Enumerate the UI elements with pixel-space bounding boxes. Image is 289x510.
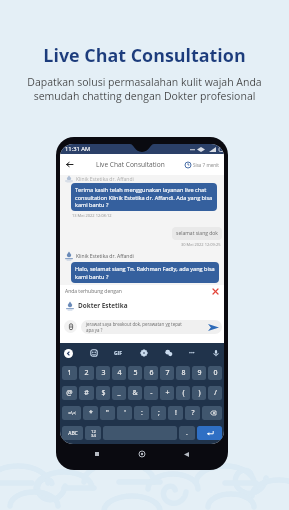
staticText: 7 <box>165 368 170 378</box>
staticText: Live Chat Consultation <box>43 43 246 67</box>
button[interactable]: ( <box>176 386 190 400</box>
button[interactable]: ABC <box>62 426 83 440</box>
button[interactable]: ? <box>185 406 200 420</box>
staticText: 4 <box>117 368 122 378</box>
button[interactable]: Emoji <box>165 349 173 357</box>
staticText: Sisa 7 menit <box>193 162 219 168</box>
staticText: 9 <box>197 368 202 378</box>
button[interactable]: ! <box>168 406 183 420</box>
other: End chat <box>212 288 219 295</box>
button[interactable]: # <box>79 386 94 400</box>
staticText: & <box>132 388 138 398</box>
button[interactable]: 7 <box>160 366 174 380</box>
staticText: Klinik Estetika dr. Affandi <box>76 253 134 260</box>
staticText: jerawat saya breakout dok, perawatan yg … <box>86 321 208 333</box>
staticText: # <box>84 388 89 398</box>
button[interactable]: Enter <box>197 426 222 440</box>
button[interactable]: _ <box>112 386 126 400</box>
staticText: Dokter Estetika <box>78 301 128 310</box>
staticText: " <box>106 408 109 418</box>
staticText: 3 <box>101 368 106 378</box>
staticText: 12 34 <box>91 429 96 438</box>
button[interactable]: 12 34 <box>85 426 101 440</box>
staticText: ; <box>158 408 160 418</box>
staticText: . <box>186 428 188 438</box>
button[interactable]: Send <box>208 322 219 333</box>
button[interactable]: 2 <box>79 366 94 380</box>
button[interactable]: + <box>160 386 174 400</box>
staticText: ••• <box>189 350 195 357</box>
staticText: 2 <box>84 368 89 378</box>
button[interactable]: . <box>179 426 195 440</box>
staticText: _ <box>117 388 121 398</box>
button[interactable]: 6 <box>144 366 158 380</box>
staticText: Live Chat Consultation <box>96 160 165 169</box>
staticText: =\< <box>68 410 76 417</box>
staticText: Klinik Estetika dr. Affandi <box>76 176 134 183</box>
staticText: Dapatkan solusi permasalahan kulit wajah… <box>27 75 262 103</box>
staticText: * <box>89 408 93 418</box>
button[interactable]: Stickers <box>90 349 98 357</box>
staticText: Halo, selamat siang Tn. Rakhman Fadly, a… <box>75 265 215 280</box>
button[interactable]: 9 <box>192 366 206 380</box>
button[interactable]: Backspace <box>202 406 222 420</box>
staticText: GIF <box>114 350 123 357</box>
staticText: Terima kasih telah menggunakan layanan l… <box>75 186 213 208</box>
button[interactable]: Voice input <box>212 349 220 357</box>
button[interactable]: 8 <box>176 366 190 380</box>
button[interactable]: 4 <box>112 366 126 380</box>
staticText: 0 <box>213 368 218 378</box>
staticText: @ <box>66 388 73 398</box>
staticText: : <box>141 408 143 418</box>
button[interactable]: 0 <box>208 366 222 380</box>
staticText: - <box>150 388 153 398</box>
button[interactable]: Settings <box>140 349 148 357</box>
button[interactable]: / <box>208 386 222 400</box>
staticText: ! <box>175 408 177 418</box>
staticText: 30 Mei 2022 12:09:25 <box>181 242 221 247</box>
button[interactable]: =\< <box>62 406 81 420</box>
button[interactable]: 1 <box>62 366 77 380</box>
staticText: 13 Mei 2022 12:08:12 <box>72 213 112 218</box>
button[interactable]: ' <box>117 406 132 420</box>
button[interactable]: * <box>83 406 98 420</box>
button[interactable]: ; <box>151 406 166 420</box>
button[interactable]: & <box>128 386 142 400</box>
button[interactable]: jerawat saya breakout dok, perawatan yg … <box>86 320 219 334</box>
button[interactable]: Expand toolbar <box>64 349 73 358</box>
staticText: ) <box>198 388 201 398</box>
staticText: / <box>214 388 217 398</box>
button[interactable]: 5 <box>128 366 142 380</box>
button[interactable]: @ <box>62 386 77 400</box>
staticText: 1 <box>67 368 72 378</box>
staticText: $ <box>101 388 106 398</box>
button[interactable]: : <box>134 406 149 420</box>
button[interactable]: Attach file <box>64 320 77 333</box>
staticText: 8 <box>181 368 186 378</box>
button[interactable]: $ <box>96 386 110 400</box>
staticText: 11:31 AM <box>65 145 91 153</box>
button[interactable]: 3 <box>96 366 110 380</box>
staticText: ABC <box>68 430 78 437</box>
staticText: + <box>165 388 170 398</box>
button[interactable]: Back <box>60 154 224 175</box>
button[interactable]: " <box>100 406 115 420</box>
other: Back <box>66 161 73 168</box>
button[interactable]: ) <box>192 386 206 400</box>
staticText: 6 <box>149 368 154 378</box>
button[interactable]: - <box>144 386 158 400</box>
staticText: Anda terhubung dengan <box>65 288 122 295</box>
staticText: selamat siang dok <box>176 230 218 237</box>
staticText: 5 <box>133 368 138 378</box>
staticText: ? <box>191 408 195 418</box>
staticText: ' <box>124 408 126 418</box>
staticText: ( <box>182 388 185 398</box>
